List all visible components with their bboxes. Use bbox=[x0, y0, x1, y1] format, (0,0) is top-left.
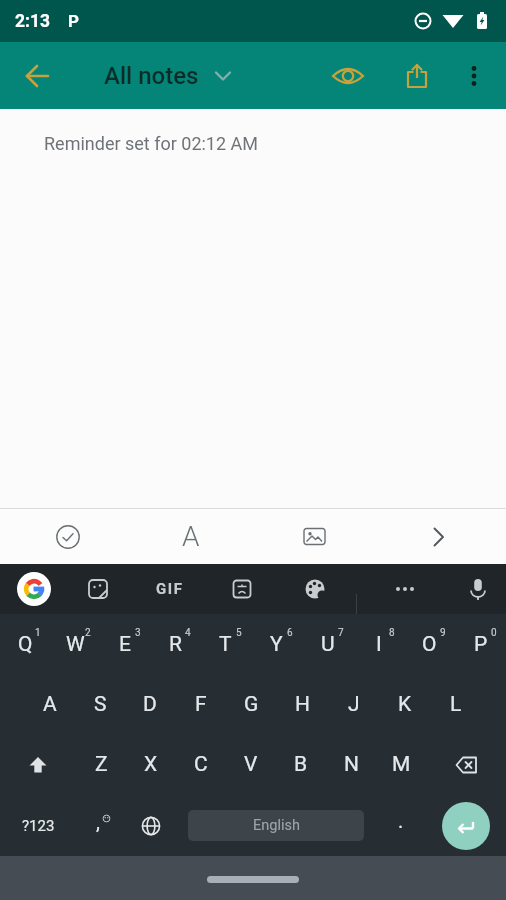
button[interactable] bbox=[465, 576, 491, 602]
staticText: 0 bbox=[491, 627, 497, 639]
staticText: P bbox=[474, 632, 488, 657]
staticText: I bbox=[376, 632, 382, 657]
button[interactable]: All notes bbox=[104, 62, 231, 90]
button[interactable]: D bbox=[125, 674, 175, 734]
button[interactable]: Z bbox=[76, 734, 126, 795]
button[interactable]: K bbox=[379, 674, 430, 734]
staticText: F bbox=[195, 692, 207, 717]
button[interactable] bbox=[330, 58, 366, 94]
staticText: R bbox=[169, 632, 182, 657]
staticText: U bbox=[321, 632, 335, 657]
button[interactable] bbox=[23, 62, 51, 90]
staticText: K bbox=[398, 692, 412, 717]
staticText: 3 bbox=[135, 627, 141, 639]
button[interactable]: X bbox=[126, 734, 176, 795]
staticText: Q bbox=[18, 632, 33, 657]
staticText: 6 bbox=[287, 627, 293, 639]
staticText: 1 bbox=[35, 627, 41, 639]
staticText: W bbox=[66, 632, 85, 657]
button[interactable]: GIF bbox=[150, 569, 190, 609]
staticText: B bbox=[294, 752, 308, 777]
button[interactable]: . bbox=[376, 795, 426, 856]
button[interactable]: ?123 bbox=[0, 795, 76, 856]
button[interactable]: B bbox=[276, 734, 326, 795]
staticText: 4 bbox=[185, 627, 191, 639]
button[interactable]: S bbox=[75, 674, 125, 734]
staticText: H bbox=[295, 692, 310, 717]
button[interactable] bbox=[302, 576, 328, 602]
staticText: D bbox=[143, 692, 157, 717]
staticText: S bbox=[94, 692, 107, 717]
staticText: 7 bbox=[338, 627, 344, 639]
staticText: N bbox=[344, 752, 359, 777]
staticText: 5 bbox=[236, 627, 242, 639]
staticText: , bbox=[96, 810, 100, 833]
staticText: Reminder set for 02:12 AM bbox=[44, 133, 259, 154]
button[interactable]: N bbox=[326, 734, 376, 795]
button[interactable]: M bbox=[376, 734, 426, 795]
button[interactable]: , bbox=[76, 795, 126, 856]
button[interactable] bbox=[85, 576, 111, 602]
button[interactable]: P bbox=[455, 614, 506, 674]
button[interactable]: L bbox=[430, 674, 481, 734]
staticText: L bbox=[450, 692, 462, 717]
button[interactable] bbox=[442, 802, 490, 850]
button[interactable]: H bbox=[277, 674, 328, 734]
button[interactable] bbox=[462, 64, 486, 88]
button[interactable]: R bbox=[150, 614, 200, 674]
button[interactable] bbox=[376, 509, 500, 564]
staticText: English bbox=[253, 817, 300, 834]
staticText: T bbox=[219, 632, 232, 657]
button[interactable]: G bbox=[226, 674, 277, 734]
staticText: A bbox=[43, 692, 57, 717]
button[interactable]: T bbox=[200, 614, 251, 674]
button[interactable]: V bbox=[226, 734, 276, 795]
button[interactable]: W bbox=[50, 614, 100, 674]
staticText: All notes bbox=[104, 62, 199, 90]
button[interactable]: J bbox=[328, 674, 379, 734]
button[interactable]: A bbox=[25, 674, 75, 734]
button[interactable]: C bbox=[176, 734, 226, 795]
button[interactable] bbox=[389, 573, 421, 605]
button[interactable]: English bbox=[188, 810, 364, 841]
staticText: C bbox=[194, 752, 208, 777]
button[interactable] bbox=[252, 509, 376, 564]
staticText: GIF bbox=[156, 580, 184, 598]
staticText: 2:13 bbox=[15, 11, 51, 32]
button[interactable]: Y bbox=[251, 614, 302, 674]
staticText: Y bbox=[270, 632, 283, 657]
button[interactable] bbox=[6, 509, 129, 564]
staticText: O bbox=[422, 632, 437, 657]
button[interactable]: U bbox=[302, 614, 353, 674]
button[interactable]: I bbox=[353, 614, 404, 674]
staticText: G bbox=[244, 692, 259, 717]
staticText: X bbox=[144, 752, 158, 777]
staticText: P bbox=[68, 11, 79, 31]
button[interactable] bbox=[0, 734, 76, 795]
staticText: A bbox=[182, 520, 200, 553]
button[interactable]: A bbox=[129, 509, 252, 564]
staticText: 2 bbox=[85, 627, 91, 639]
staticText: E bbox=[119, 632, 131, 657]
staticText: 9 bbox=[440, 627, 446, 639]
staticText: . bbox=[398, 809, 404, 832]
button[interactable]: Q bbox=[0, 614, 50, 674]
button[interactable] bbox=[17, 572, 51, 606]
button[interactable] bbox=[126, 795, 176, 856]
button[interactable]: E bbox=[100, 614, 150, 674]
button[interactable] bbox=[229, 576, 255, 602]
button[interactable]: F bbox=[175, 674, 226, 734]
staticText: J bbox=[348, 692, 360, 717]
button[interactable] bbox=[403, 62, 431, 90]
button[interactable] bbox=[426, 734, 506, 795]
staticText: M bbox=[392, 752, 411, 777]
staticText: V bbox=[244, 752, 258, 777]
staticText: 8 bbox=[389, 627, 395, 639]
button[interactable]: O bbox=[404, 614, 455, 674]
staticText: ?123 bbox=[22, 817, 55, 835]
staticText: Z bbox=[95, 752, 108, 777]
